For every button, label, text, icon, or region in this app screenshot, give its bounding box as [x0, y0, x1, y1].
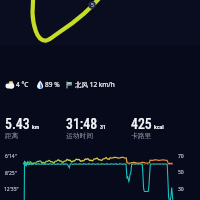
button[interactable]: 5.43 — [5, 116, 40, 141]
staticText: 北风 12 km/h — [75, 80, 115, 89]
staticText: 运动时间 — [66, 131, 94, 140]
staticText: 8'25" — [5, 170, 17, 177]
staticText: 卡路里 — [131, 131, 152, 140]
staticText: 89 % — [45, 80, 60, 89]
staticText: 5.43 — [5, 116, 30, 132]
staticText: 31:48 — [66, 116, 98, 132]
staticText: 距离 — [5, 131, 19, 140]
button[interactable]: 31:48 — [66, 116, 106, 141]
staticText: km — [32, 123, 40, 130]
staticText: 5 — [91, 2, 94, 9]
staticText: 12'35" — [4, 186, 19, 193]
staticText: 425 — [131, 116, 152, 132]
staticText: 6'14" — [5, 153, 17, 160]
staticText: 50 — [178, 169, 184, 176]
staticText: 4 °C — [16, 80, 29, 89]
staticText: 70 — [178, 153, 184, 160]
button[interactable]: 425 — [131, 116, 164, 141]
button[interactable]: 5 — [0, 0, 200, 45]
staticText: 31 — [100, 123, 106, 130]
staticText: kcal — [154, 123, 164, 130]
staticText: 30 — [178, 186, 184, 193]
